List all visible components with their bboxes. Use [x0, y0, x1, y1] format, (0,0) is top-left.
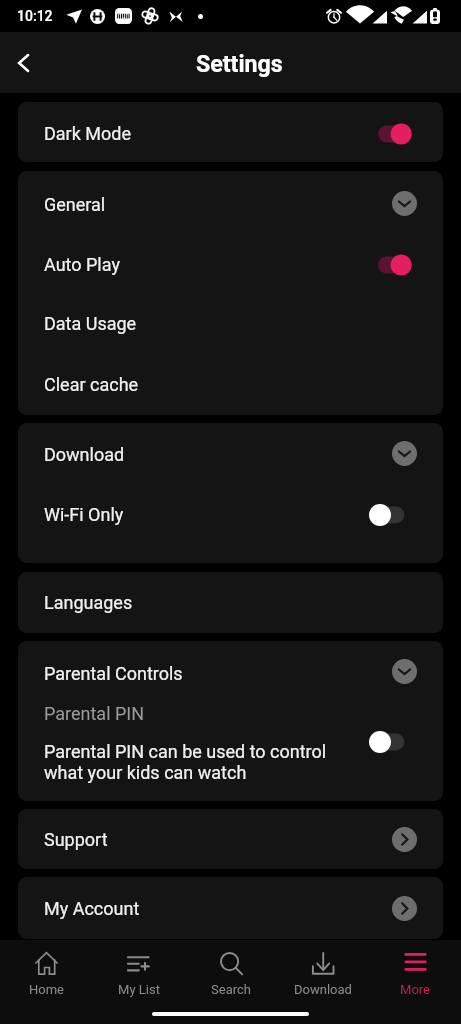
staticText: Parental PIN: [44, 703, 145, 724]
staticText: Parental Controls: [44, 663, 183, 684]
button[interactable]: Toggle off: [369, 500, 417, 526]
staticText: Support: [44, 829, 108, 850]
button[interactable]: Collapse Parental Controls: [392, 659, 417, 684]
button[interactable]: Collapse Download: [392, 441, 417, 466]
button[interactable]: Open Support: [392, 827, 417, 852]
staticText: Search: [211, 982, 251, 997]
staticText: 10:12: [17, 8, 53, 24]
button[interactable]: Parental PIN can be used to control what…: [18, 729, 443, 801]
button[interactable]: My List: [93, 940, 185, 1024]
staticText: Dark Mode: [44, 123, 131, 144]
staticText: Home: [29, 982, 64, 997]
button[interactable]: Collapse General: [392, 191, 417, 216]
button[interactable]: Toggle on: [369, 250, 417, 276]
staticText: Settings: [196, 50, 283, 77]
button[interactable]: Clear cache: [18, 353, 443, 413]
staticText: My List: [118, 982, 160, 997]
button[interactable]: Download: [277, 940, 369, 1024]
button[interactable]: Parental PIN: [18, 702, 443, 729]
button[interactable]: General: [18, 173, 443, 233]
button[interactable]: My Account: [18, 877, 443, 939]
button[interactable]: Parental Controls: [18, 641, 443, 702]
staticText: Download: [294, 982, 352, 997]
button[interactable]: Home: [0, 940, 93, 1024]
staticText: General: [44, 194, 106, 215]
staticText: Clear cache: [44, 374, 139, 395]
staticText: Download: [44, 444, 125, 465]
button[interactable]: Dark Mode: [18, 102, 443, 162]
button[interactable]: Wi-Fi Only: [18, 483, 443, 543]
button[interactable]: Languages: [18, 572, 443, 633]
button[interactable]: Auto Play: [18, 233, 443, 293]
staticText: Wi-Fi Only: [44, 504, 124, 525]
button[interactable]: Search: [185, 940, 277, 1024]
staticText: Data Usage: [44, 313, 137, 334]
staticText: Parental PIN can be used to control what…: [44, 741, 344, 783]
button[interactable]: Open My Account: [392, 896, 417, 921]
staticText: My Account: [44, 898, 140, 919]
button[interactable]: Support: [18, 809, 443, 869]
staticText: More: [400, 982, 430, 997]
button[interactable]: Toggle on: [369, 119, 417, 145]
staticText: Languages: [44, 592, 133, 613]
staticText: Auto Play: [44, 254, 120, 275]
button[interactable]: Back: [13, 49, 33, 77]
button[interactable]: Download: [18, 423, 443, 483]
button[interactable]: Toggle off: [369, 727, 417, 753]
button[interactable]: More: [369, 940, 461, 1024]
button[interactable]: Data Usage: [18, 293, 443, 353]
